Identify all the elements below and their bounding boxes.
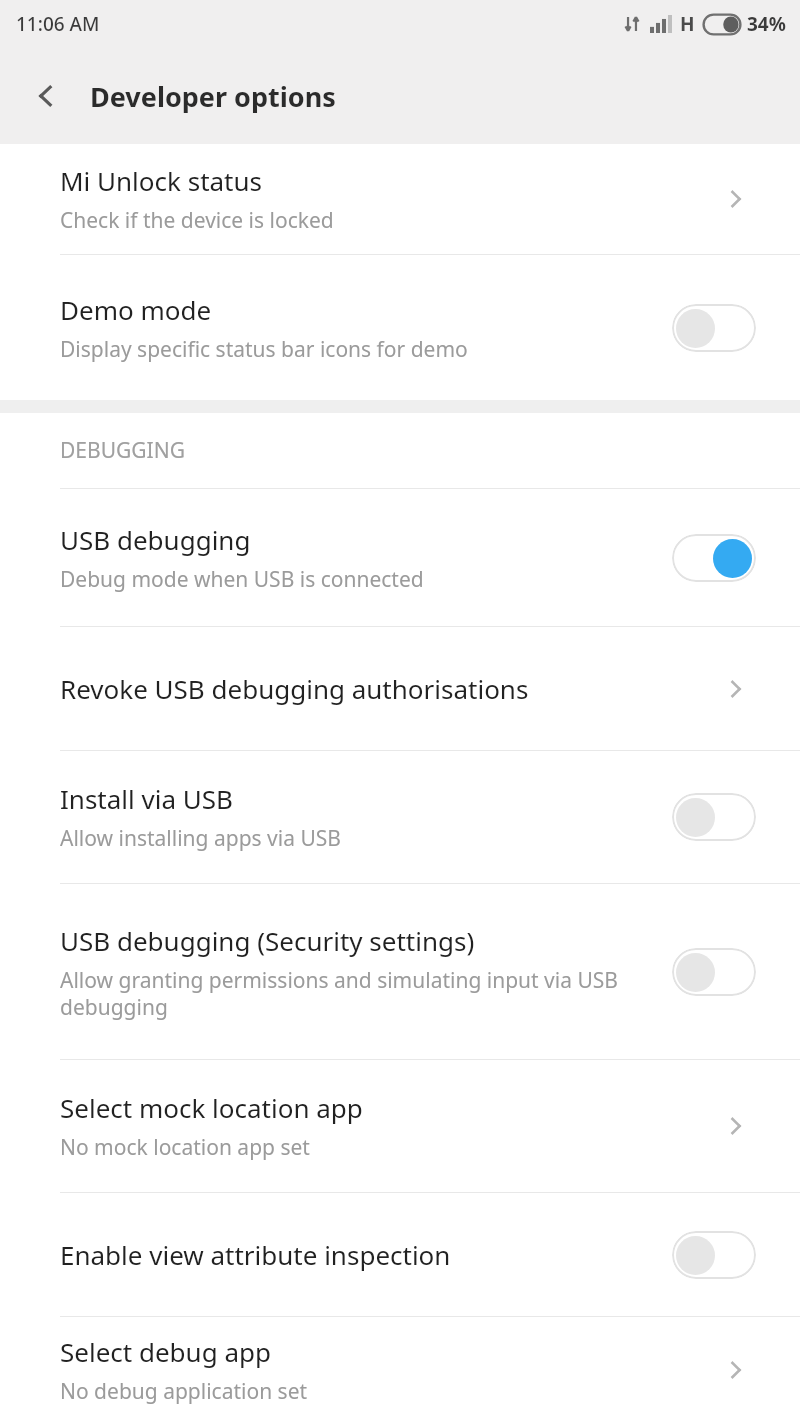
- staticText: Enable view attribute inspection: [60, 1237, 451, 1272]
- staticText: 34%: [747, 11, 786, 37]
- staticText: Revoke USB debugging authorisations: [60, 671, 529, 706]
- button[interactable]: USB debugging: [0, 489, 800, 626]
- staticText: No mock location app set: [60, 1133, 310, 1162]
- staticText: H: [680, 11, 695, 37]
- other: Open: [716, 179, 756, 219]
- staticText: No debug application set: [60, 1377, 308, 1406]
- button[interactable]: Demo mode: [0, 255, 800, 400]
- button[interactable]: Revoke USB debugging authorisations: [0, 627, 800, 750]
- staticText: Install via USB: [60, 781, 233, 816]
- staticText: USB debugging: [60, 522, 251, 557]
- staticText: USB debugging (Security settings): [60, 923, 475, 958]
- staticText: Developer options: [90, 78, 336, 115]
- other: Open: [716, 669, 756, 709]
- staticText: Demo mode: [60, 292, 212, 327]
- staticText: Allow granting permissions and simulatin…: [60, 966, 658, 1021]
- staticText: DEBUGGING: [60, 436, 185, 465]
- button[interactable]: Back: [18, 68, 74, 124]
- button[interactable]: Off: [672, 304, 756, 352]
- button[interactable]: Select mock location app: [0, 1060, 800, 1192]
- button[interactable]: Mi Unlock status: [0, 144, 800, 254]
- button[interactable]: Select debug app: [0, 1317, 800, 1422]
- staticText: Check if the device is locked: [60, 206, 334, 235]
- button[interactable]: On: [672, 534, 756, 582]
- other: Open: [716, 1106, 756, 1146]
- button[interactable]: USB debugging (Security settings): [0, 884, 800, 1059]
- other: Open: [716, 1350, 756, 1390]
- staticText: Mi Unlock status: [60, 163, 263, 198]
- staticText: Select mock location app: [60, 1090, 363, 1125]
- staticText: Display specific status bar icons for de…: [60, 335, 468, 364]
- button[interactable]: Off: [672, 793, 756, 841]
- staticText: Allow installing apps via USB: [60, 824, 341, 853]
- button[interactable]: Off: [672, 948, 756, 996]
- button[interactable]: Enable view attribute inspection: [0, 1193, 800, 1316]
- staticText: Select debug app: [60, 1334, 271, 1369]
- button[interactable]: Off: [672, 1231, 756, 1279]
- button[interactable]: Install via USB: [0, 751, 800, 883]
- staticText: 11:06 AM: [16, 11, 100, 37]
- staticText: Debug mode when USB is connected: [60, 565, 424, 594]
